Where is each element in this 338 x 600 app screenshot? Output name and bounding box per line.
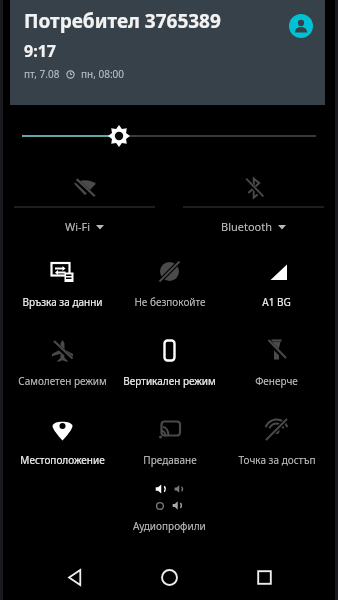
- button[interactable]: Предаване: [116, 412, 223, 469]
- button[interactable]: Bluetooth: [169, 169, 338, 234]
- staticText: Вертикален режим: [123, 374, 216, 388]
- staticText: Фенерче: [255, 374, 298, 388]
- staticText: Потребител 3765389: [24, 8, 221, 34]
- button[interactable]: Аудиопрофили: [0, 483, 338, 533]
- button[interactable]: Точка за достъп: [223, 412, 330, 469]
- button[interactable]: Home: [148, 556, 190, 598]
- button[interactable]: Фенерче: [223, 333, 330, 390]
- button[interactable]: A1 BG: [223, 254, 330, 311]
- button[interactable]: Back: [53, 556, 95, 598]
- button[interactable]: Brightness: [0, 121, 338, 151]
- staticText: 9:17: [24, 40, 56, 62]
- staticText: Bluetooth: [221, 219, 273, 234]
- button[interactable]: Вертикален режим: [116, 333, 223, 390]
- staticText: Точка за достъп: [238, 453, 316, 467]
- staticText: Предаване: [143, 453, 197, 467]
- button[interactable]: Местоположение: [8, 412, 116, 469]
- staticText: Самолетен режим: [18, 374, 107, 388]
- staticText: Не безпокойте: [134, 295, 206, 309]
- staticText: Wi-Fi: [65, 219, 91, 234]
- staticText: A1 BG: [262, 295, 291, 309]
- staticText: пн, 08:00: [81, 67, 125, 81]
- button[interactable]: Wi-Fi: [0, 169, 169, 234]
- staticText: пт, 7.08: [24, 67, 60, 81]
- staticText: Аудиопрофили: [133, 519, 206, 533]
- button[interactable]: Recent apps: [243, 556, 285, 598]
- button[interactable]: Не безпокойте: [116, 254, 223, 311]
- button[interactable]: Връзка за данни: [8, 254, 116, 311]
- button[interactable]: User account: [287, 12, 315, 40]
- staticText: Местоположение: [20, 453, 105, 467]
- button[interactable]: Самолетен режим: [8, 333, 116, 390]
- staticText: Връзка за данни: [22, 295, 103, 309]
